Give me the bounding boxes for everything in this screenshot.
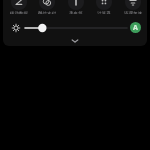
- button[interactable]: 手电筒: [62, 0, 89, 19]
- staticText: 手电筒: [69, 11, 83, 14]
- button[interactable]: Auto brightness: [130, 22, 141, 33]
- button[interactable]: Brightness slider: [25, 21, 127, 35]
- staticText: A: [133, 23, 138, 33]
- staticText: 移动数据: [10, 11, 28, 14]
- button[interactable]: Brightness: [9, 21, 23, 35]
- button[interactable]: 微信支付: [33, 0, 60, 19]
- button[interactable]: 计算器: [90, 0, 117, 19]
- staticText: 计算器: [97, 11, 111, 14]
- button[interactable]: 清理加速: [119, 0, 146, 19]
- button[interactable]: Expand: [3, 36, 147, 46]
- staticText: 微信支付: [38, 11, 56, 14]
- button[interactable]: 移动数据: [5, 0, 32, 19]
- staticText: 清理加速: [124, 11, 142, 14]
